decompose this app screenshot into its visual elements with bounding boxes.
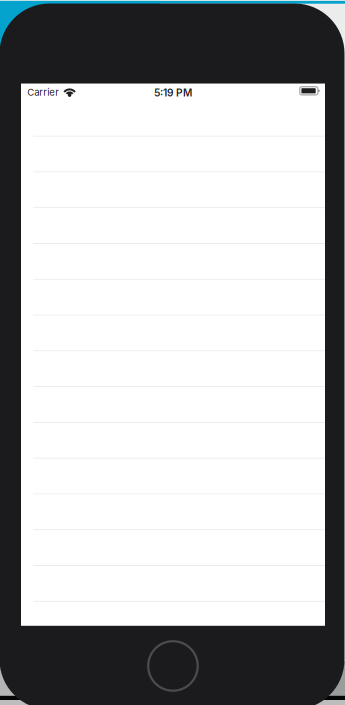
button[interactable]: [21, 208, 325, 244]
button[interactable]: [21, 602, 325, 638]
staticText: 5:19 PM: [154, 87, 192, 99]
button[interactable]: [21, 530, 325, 566]
button[interactable]: [21, 387, 325, 423]
staticText: Carrier: [27, 86, 59, 98]
